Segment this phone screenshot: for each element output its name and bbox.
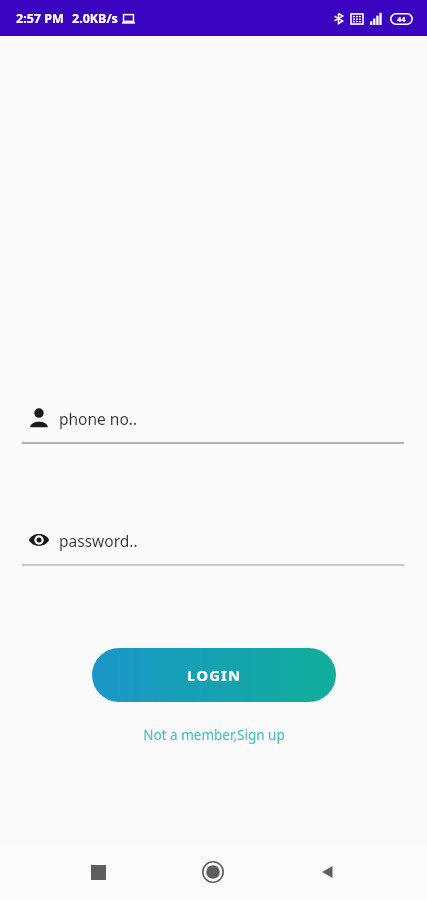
button[interactable]: Home (190, 849, 236, 895)
staticText: 2.0KB/s (72, 10, 118, 27)
staticText: 44 (397, 14, 406, 24)
button[interactable]: Not a member,Sign up (137, 723, 291, 747)
staticText: LOGIN (187, 665, 242, 685)
button[interactable]: Back (305, 849, 351, 895)
other: Show password (28, 529, 50, 551)
button[interactable]: Person (0, 407, 427, 446)
other: Person (28, 407, 50, 429)
button[interactable]: LOGIN (92, 648, 336, 702)
staticText: password.. (59, 530, 138, 551)
button[interactable]: Recents (75, 849, 121, 895)
button[interactable]: Show password (0, 529, 427, 568)
staticText: 2:57 PM (16, 10, 64, 27)
staticText: phone no.. (59, 408, 138, 429)
staticText: Not a member,Sign up (143, 726, 285, 744)
